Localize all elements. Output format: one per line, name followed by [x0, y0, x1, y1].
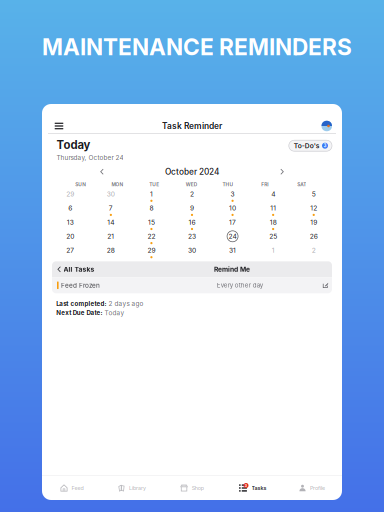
staticText: Feed Frozen: [61, 281, 100, 289]
staticText: 12: [310, 204, 317, 212]
staticText: Every other day: [217, 282, 263, 289]
staticText: Task Reminder: [162, 121, 222, 131]
staticText: 2 days ago: [109, 300, 144, 307]
staticText: 1: [272, 246, 275, 254]
staticText: 30: [188, 246, 196, 254]
staticText: 10: [229, 204, 236, 212]
button[interactable]: Feed: [42, 476, 102, 500]
staticText: To-Do's: [294, 142, 320, 150]
staticText: Feed: [72, 485, 84, 491]
staticText: 7: [109, 204, 113, 212]
staticText: Tasks: [251, 485, 266, 491]
staticText: Thursday, October 24: [56, 154, 123, 161]
staticText: Next: [56, 309, 71, 316]
staticText: THU: [222, 181, 233, 187]
staticText: Due: [73, 309, 85, 316]
staticText: 20: [66, 232, 74, 240]
staticText: 29: [147, 246, 155, 254]
staticText: 3: [244, 483, 247, 488]
staticText: Date:: [86, 309, 102, 316]
staticText: 1: [150, 190, 153, 198]
staticText: 26: [310, 232, 318, 240]
staticText: 22: [147, 232, 155, 240]
staticText: 24: [229, 232, 237, 240]
staticText: FRI: [261, 181, 268, 187]
staticText: 3: [231, 190, 235, 198]
staticText: 14: [107, 218, 114, 226]
staticText: 8: [149, 204, 153, 212]
button[interactable]: All Tasks: [52, 261, 95, 277]
staticText: 19: [310, 218, 317, 226]
staticText: October 2024: [165, 167, 219, 177]
button[interactable]: 3: [222, 476, 282, 500]
staticText: 21: [107, 232, 114, 240]
button[interactable]: Previous month: [94, 167, 110, 177]
staticText: All Tasks: [64, 265, 95, 273]
staticText: 25: [269, 232, 277, 240]
staticText: 6: [68, 204, 72, 212]
staticText: 2: [190, 190, 194, 198]
staticText: Remind Me: [214, 265, 250, 273]
staticText: 27: [66, 246, 74, 254]
staticText: 30: [107, 190, 115, 198]
button[interactable]: Shop: [162, 476, 222, 500]
staticText: 29: [66, 190, 74, 198]
staticText: MAINTENANCE REMINDERS: [42, 33, 352, 61]
staticText: 31: [229, 246, 236, 254]
staticText: 17: [229, 218, 236, 226]
button[interactable]: Library: [102, 476, 162, 500]
staticText: WED: [186, 181, 197, 187]
staticText: 13: [67, 218, 74, 226]
staticText: Today: [105, 309, 125, 317]
staticText: TUE: [149, 181, 159, 187]
button[interactable]: Menu: [42, 119, 75, 132]
staticText: Profile: [310, 485, 325, 491]
button[interactable]: To-Do's: [289, 140, 332, 151]
staticText: Today: [56, 138, 90, 152]
staticText: Last: [56, 300, 68, 307]
staticText: Shop: [192, 485, 204, 491]
staticText: SUN: [75, 181, 86, 187]
button[interactable]: Next month: [274, 167, 290, 177]
button[interactable]: Account: [312, 119, 342, 132]
staticText: 3: [323, 143, 326, 148]
staticText: 15: [148, 218, 155, 226]
staticText: 28: [107, 246, 115, 254]
staticText: 23: [188, 232, 196, 240]
staticText: Library: [129, 485, 146, 491]
staticText: 5: [312, 190, 316, 198]
staticText: 2: [312, 246, 316, 254]
staticText: 9: [190, 204, 194, 212]
staticText: 18: [270, 218, 277, 226]
staticText: 16: [188, 218, 195, 226]
staticText: completed:: [70, 300, 106, 307]
staticText: 4: [271, 190, 275, 198]
staticText: MON: [111, 181, 123, 187]
button[interactable]: Profile: [282, 476, 342, 500]
staticText: 11: [270, 204, 276, 212]
button[interactable]: Edit task: [323, 282, 328, 288]
staticText: SAT: [297, 181, 306, 187]
